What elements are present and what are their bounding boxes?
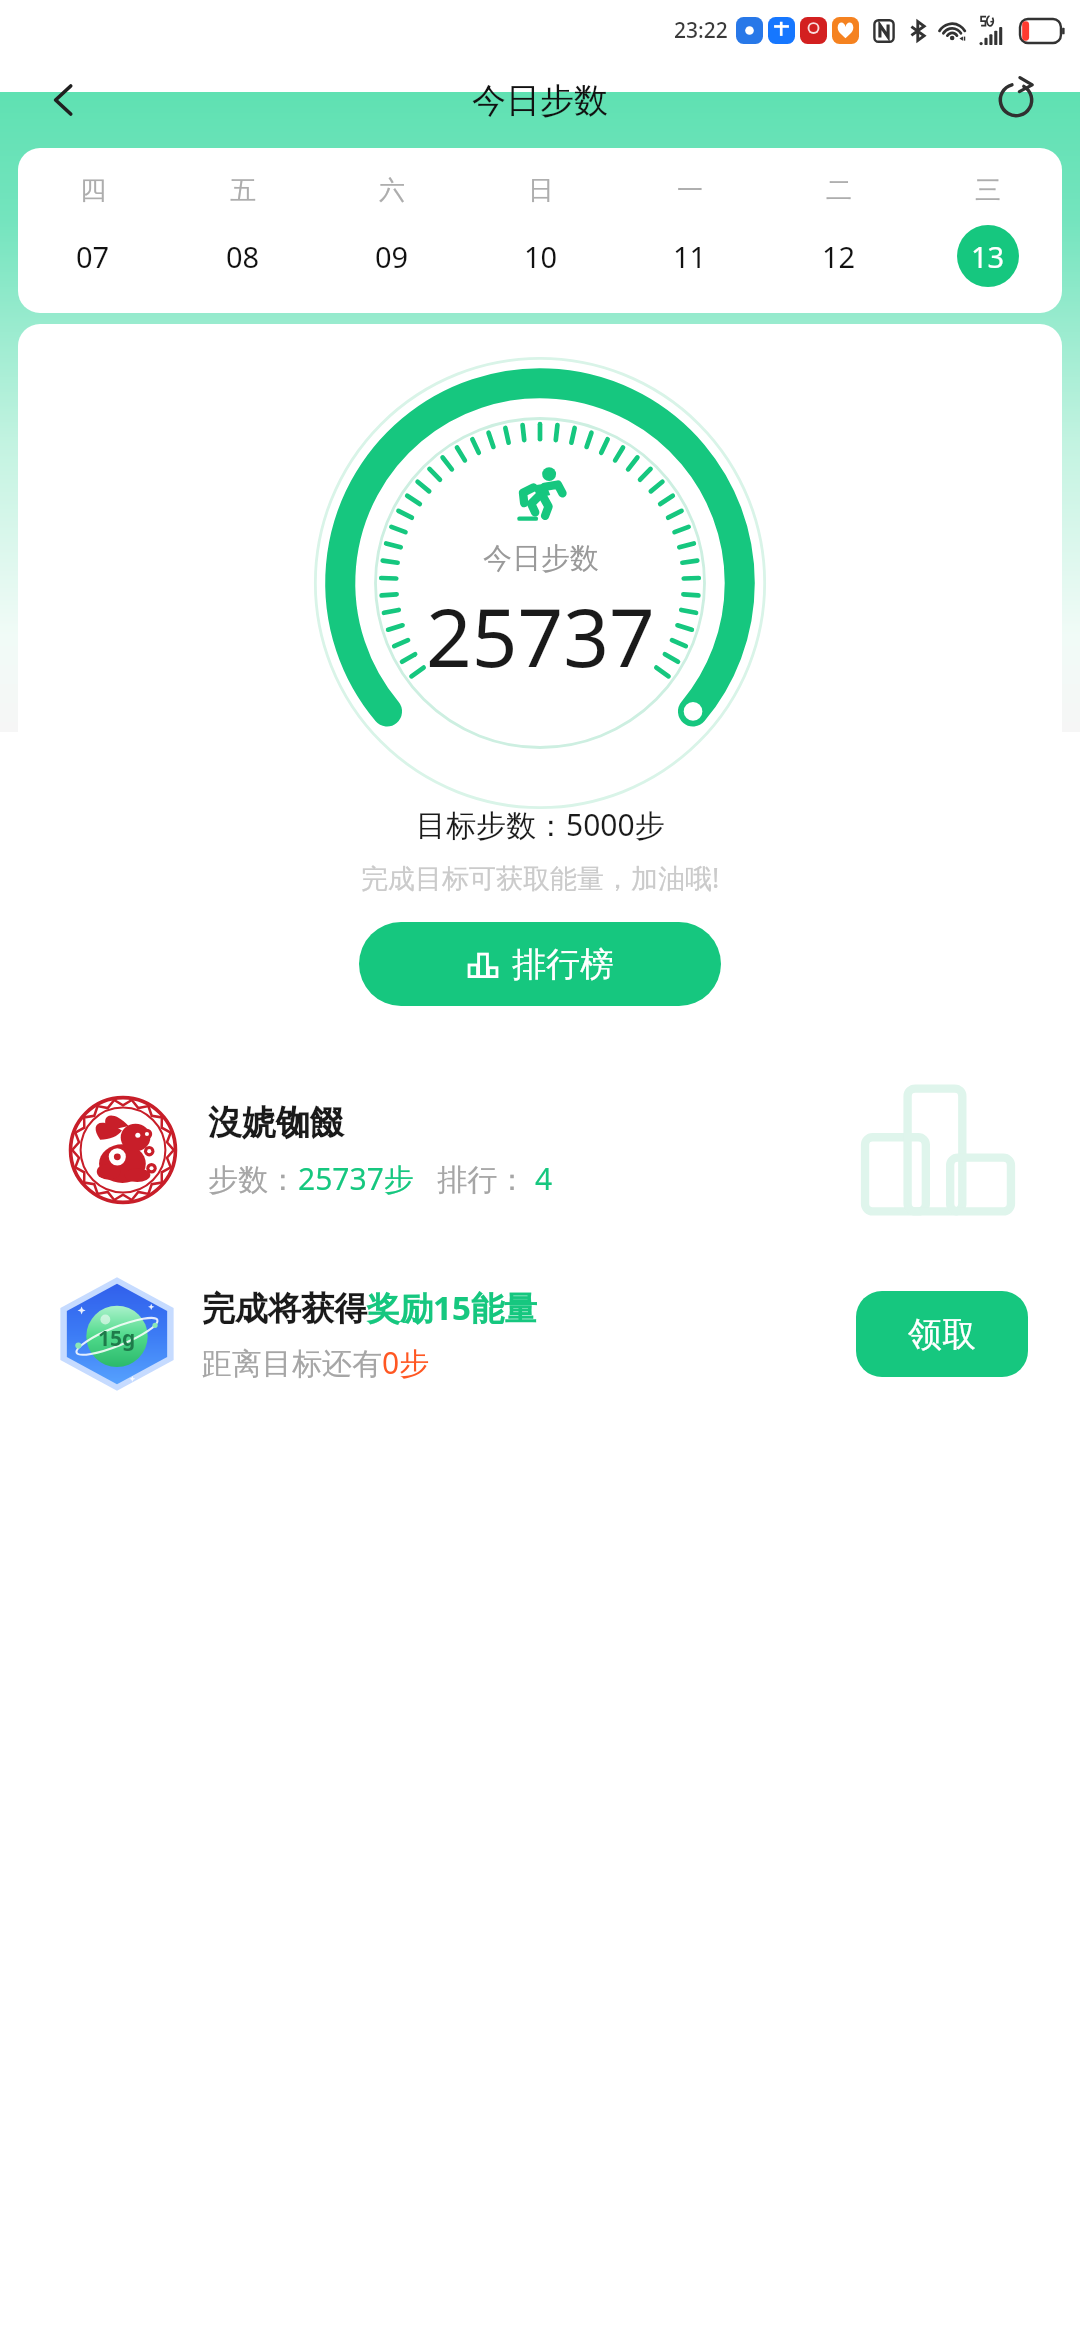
staticText: 08 — [226, 237, 260, 276]
staticText: 09 — [375, 237, 409, 276]
other: Battery 10 percent — [1020, 19, 1066, 43]
other: Mobile signal — [978, 15, 1009, 46]
staticText: 六 — [379, 174, 405, 207]
staticText: 步数：25737步 排行： 4 — [208, 1158, 553, 1199]
staticText: 10 — [524, 237, 558, 276]
staticText: 13 — [971, 237, 1005, 276]
button[interactable]: Share — [988, 72, 1044, 128]
staticText: 沒婋铷餟 — [208, 1101, 344, 1144]
staticText: 距离目标还有0步 — [202, 1342, 430, 1383]
button[interactable]: 四 — [18, 174, 168, 287]
button[interactable]: 二 — [764, 174, 913, 287]
staticText: 07 — [76, 237, 110, 276]
staticText: 目标步数：5000步 — [416, 804, 665, 845]
staticText: 25737 — [426, 581, 655, 690]
staticText: 今日步数 — [472, 79, 608, 122]
other: Wi-Fi — [940, 17, 967, 44]
staticText: 领取 — [908, 1313, 976, 1356]
staticText: 四 — [80, 174, 106, 207]
button[interactable]: 领取 — [856, 1291, 1028, 1377]
other: Bluetooth — [907, 20, 929, 42]
staticText: 三 — [975, 174, 1001, 207]
button[interactable]: Back — [36, 72, 92, 128]
button[interactable]: 五 — [168, 174, 317, 287]
button[interactable]: 沒婋铷餟 — [18, 1059, 1062, 1241]
staticText: 二 — [826, 174, 852, 207]
button[interactable]: 日 — [466, 174, 615, 287]
staticText: 23:22 — [674, 16, 728, 45]
staticText: 15g — [98, 1324, 136, 1353]
button[interactable]: 排行榜 — [359, 922, 721, 1006]
button[interactable]: 一 — [615, 174, 764, 287]
staticText: 12 — [822, 237, 856, 276]
staticText: 排行榜 — [512, 943, 614, 986]
staticText: 完成将获得奖励15能量 — [202, 1285, 537, 1330]
other: NFC — [872, 19, 896, 43]
button[interactable]: 三 — [913, 174, 1062, 287]
button[interactable]: 六 — [317, 174, 466, 287]
staticText: 五 — [230, 174, 256, 207]
staticText: 日 — [528, 174, 554, 207]
staticText: 今日步数 — [483, 540, 599, 577]
staticText: 11 — [673, 237, 707, 276]
staticText: 完成目标可获取能量，加油哦! — [361, 859, 720, 896]
staticText: 一 — [677, 174, 703, 207]
